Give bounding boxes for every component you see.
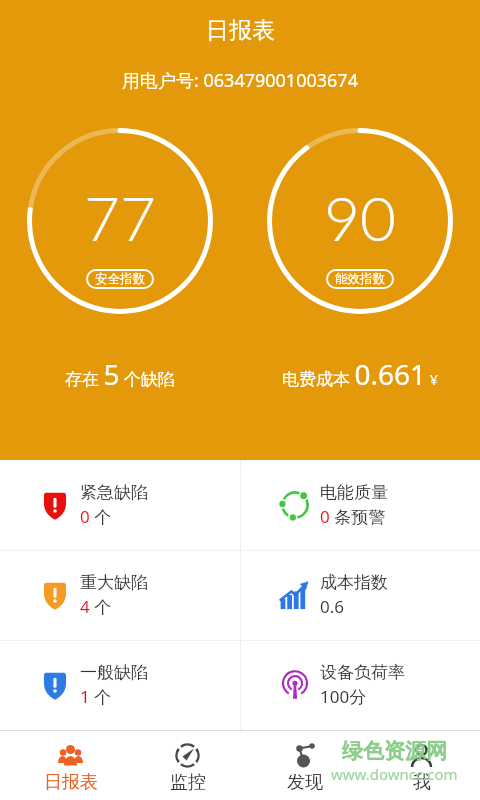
staticText: 100分 [320, 685, 367, 708]
button[interactable]: 电能质量 [240, 460, 480, 550]
staticText: www.downcc.com [331, 764, 458, 784]
staticText: 1 个 [80, 685, 112, 708]
button[interactable]: 紧急缺陷 [0, 460, 240, 550]
staticText: 电费成本 0.661 ¥ [282, 355, 438, 393]
staticText: 监控 [170, 771, 206, 794]
staticText: 我 [413, 771, 431, 794]
button[interactable]: 重大缺陷 [0, 550, 240, 640]
staticText: 能效指数 [335, 271, 385, 287]
staticText: 存在 5 个缺陷 [65, 355, 175, 393]
button[interactable]: 成本指数 [240, 550, 480, 640]
staticText: 日报表 [206, 16, 275, 45]
button[interactable]: 日报表 [12, 731, 129, 800]
button[interactable]: 一般缺陷 [0, 640, 240, 730]
staticText: 用电户号: 063479001003674 [122, 68, 358, 93]
staticText: 设备负荷率 [320, 662, 405, 683]
staticText: 电能质量 [320, 482, 388, 503]
staticText: 0 条预警 [320, 505, 386, 528]
staticText: 成本指数 [320, 572, 388, 593]
button[interactable]: 我 [363, 731, 480, 800]
staticText: 4 个 [80, 595, 112, 618]
staticText: 绿色资源网 [342, 738, 447, 764]
staticText: 一般缺陷 [80, 662, 148, 683]
staticText: 紧急缺陷 [80, 482, 148, 503]
button[interactable]: 设备负荷率 [240, 640, 480, 730]
staticText: 安全指数 [95, 271, 145, 287]
staticText: 发现 [287, 771, 323, 794]
staticText: 0 个 [80, 505, 112, 528]
button[interactable]: 发现 [246, 731, 363, 800]
staticText: 0.6 [320, 595, 345, 618]
button[interactable]: 监控 [129, 731, 246, 800]
staticText: 77 [84, 180, 156, 254]
staticText: 重大缺陷 [80, 572, 148, 593]
staticText: 日报表 [44, 771, 98, 794]
staticText: 90 [324, 180, 396, 254]
